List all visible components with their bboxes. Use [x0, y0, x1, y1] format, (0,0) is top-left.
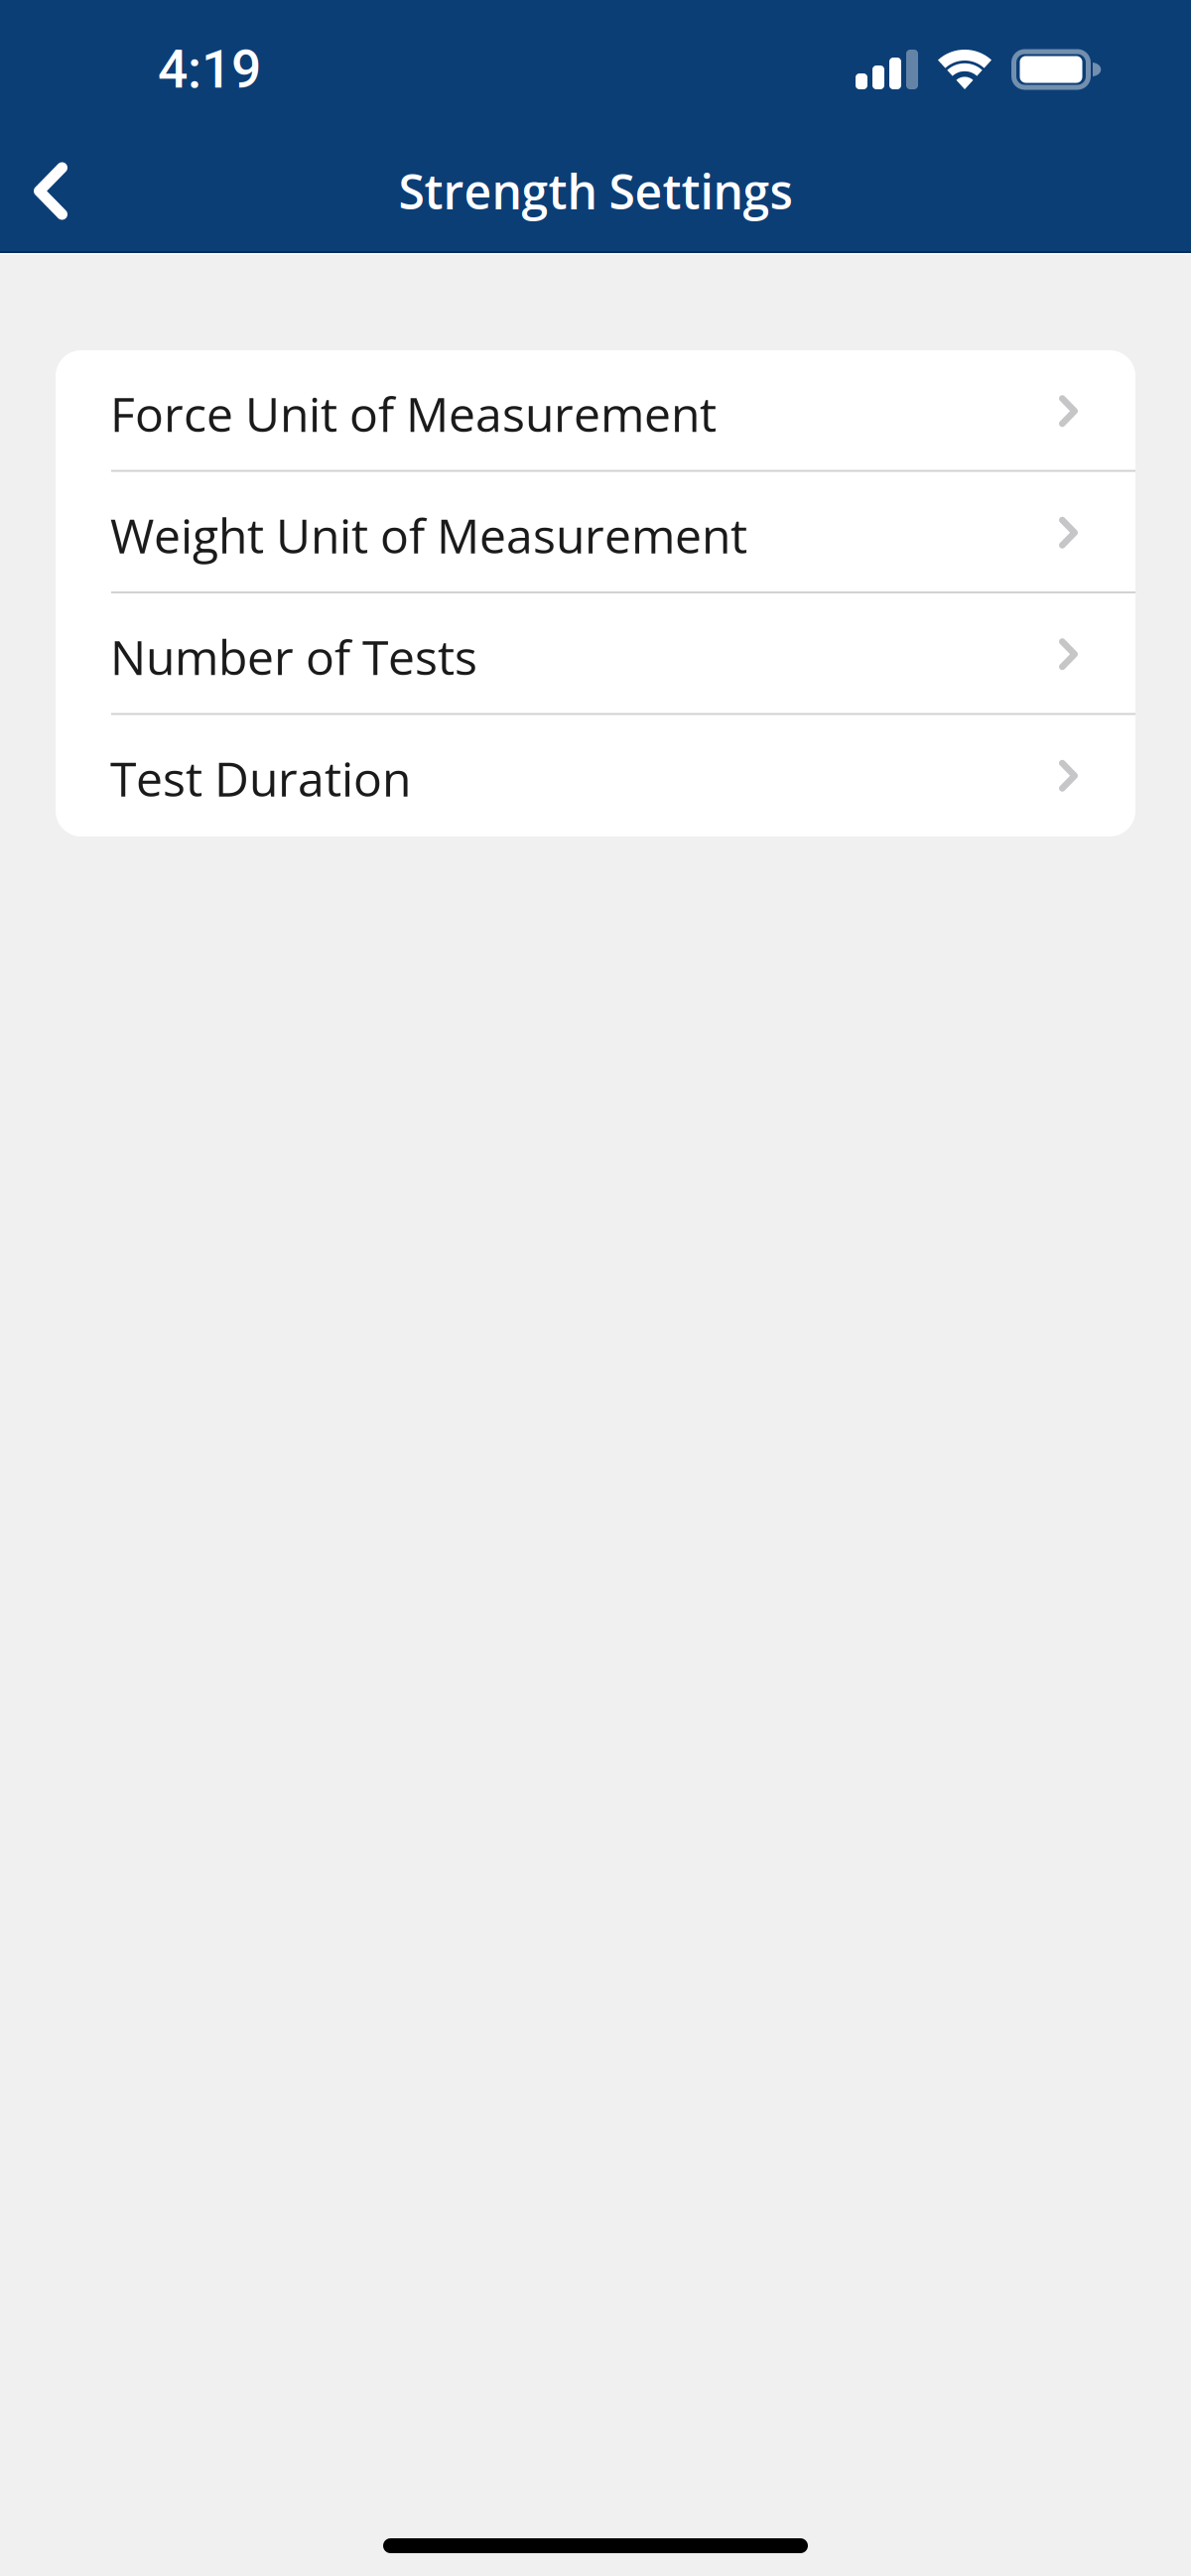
- button[interactable]: Test Duration: [56, 715, 1135, 837]
- staticText: Weight Unit of Measurement: [110, 503, 747, 568]
- staticText: Force Unit of Measurement: [110, 381, 717, 446]
- staticText: Strength Settings: [398, 159, 793, 223]
- button[interactable]: Back: [0, 129, 107, 253]
- button[interactable]: Number of Tests: [56, 593, 1135, 715]
- button[interactable]: Weight Unit of Measurement: [56, 472, 1135, 593]
- staticText: Number of Tests: [110, 624, 477, 689]
- staticText: Test Duration: [110, 746, 411, 811]
- staticText: 4:19: [158, 39, 261, 101]
- button[interactable]: Force Unit of Measurement: [56, 350, 1135, 472]
